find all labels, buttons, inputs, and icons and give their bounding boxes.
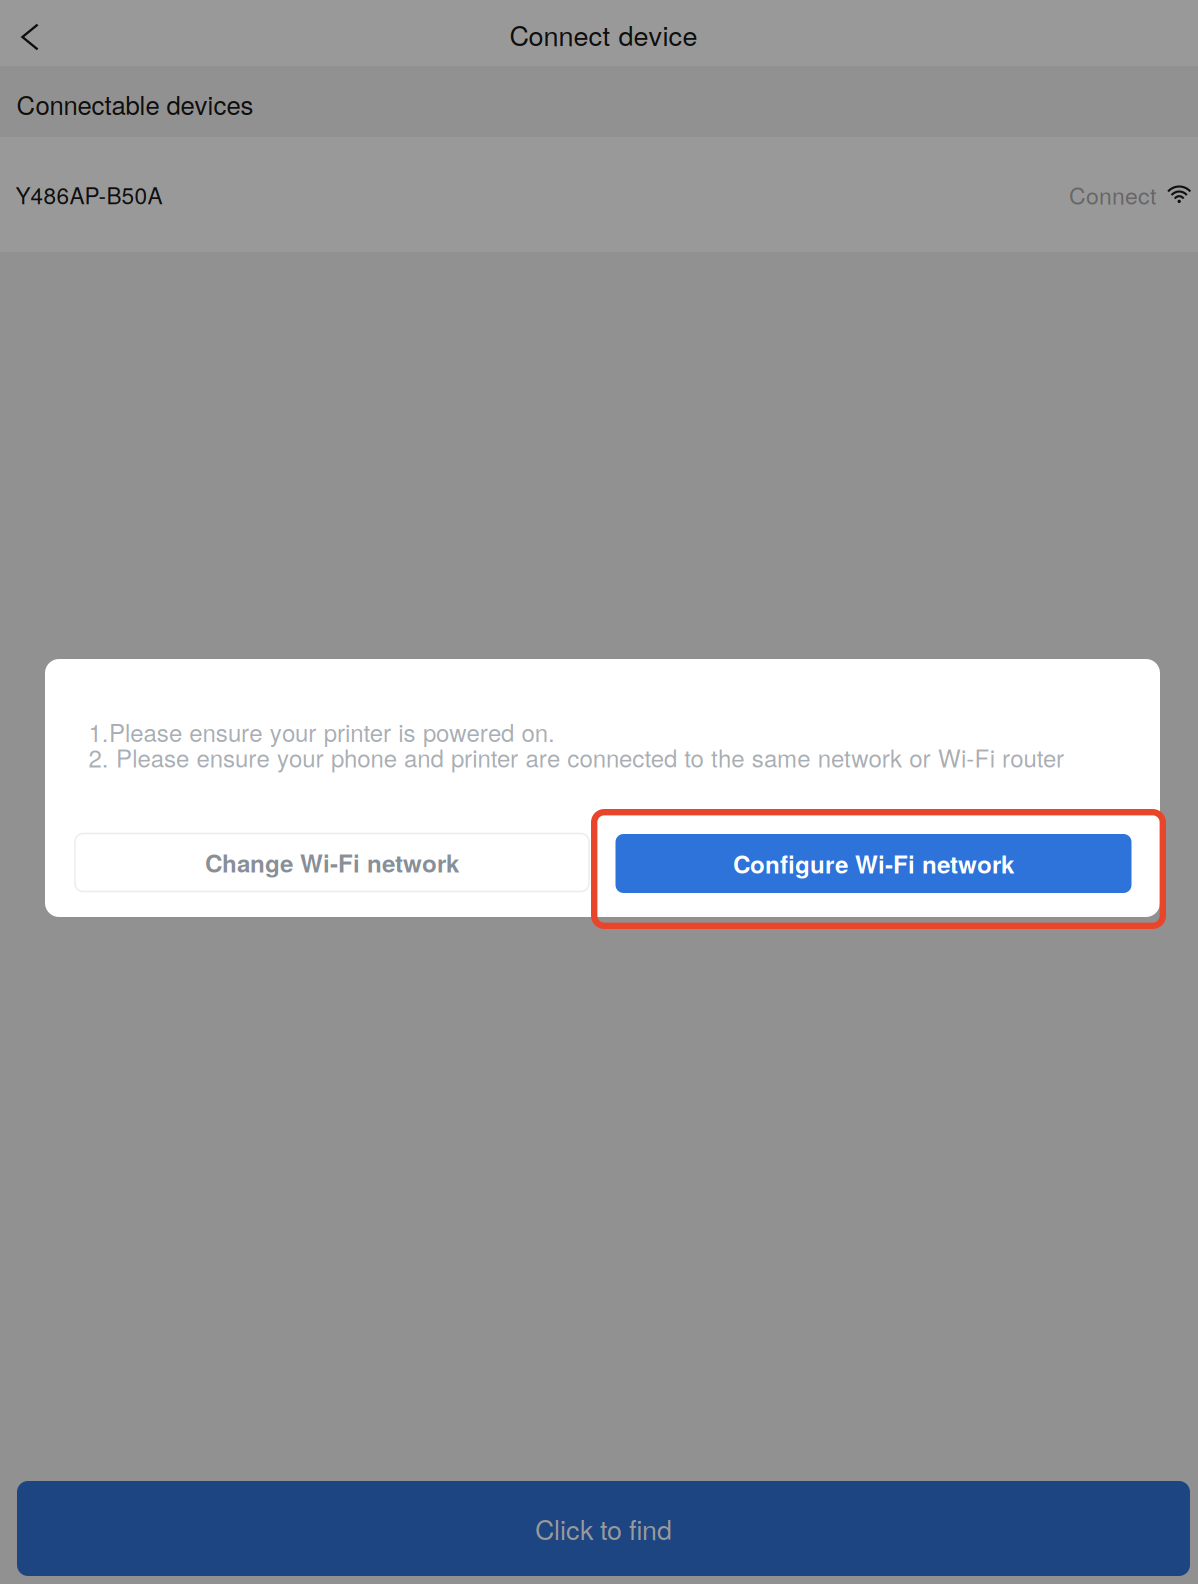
- staticText: 2. Please ensure your phone and printer …: [88, 740, 1064, 774]
- button[interactable]: Configure Wi-Fi network: [615, 834, 1131, 893]
- staticText: Connect: [1069, 178, 1156, 211]
- staticText: 1.Please ensure your printer is powered …: [88, 714, 555, 749]
- button[interactable]: Back: [0, 0, 44, 56]
- staticText: Y486AP-B50A: [15, 178, 162, 211]
- staticText: Configure Wi-Fi network: [733, 846, 1014, 881]
- button[interactable]: Change Wi-Fi network: [75, 833, 589, 891]
- staticText: Change Wi-Fi network: [205, 845, 459, 880]
- staticText: Connect device: [509, 15, 697, 54]
- staticText: Click to find: [535, 1509, 672, 1548]
- button[interactable]: Click to find: [17, 1481, 1190, 1576]
- staticText: Connectable devices: [16, 86, 253, 122]
- button[interactable]: Y486AP-B50A: [0, 137, 1198, 252]
